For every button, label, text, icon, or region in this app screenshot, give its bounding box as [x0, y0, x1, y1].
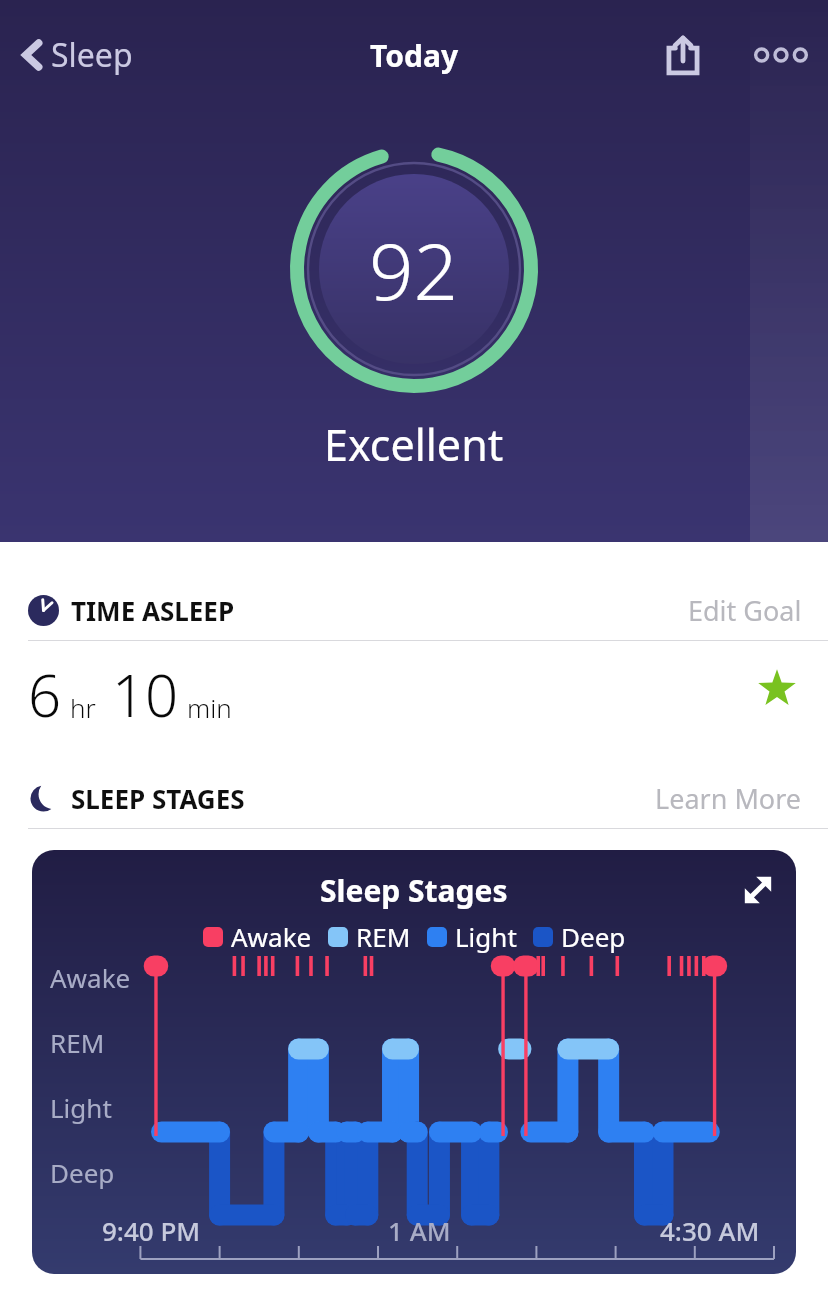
staticText: min	[187, 690, 232, 725]
staticText: REM	[50, 1025, 105, 1060]
button[interactable]: Edit Goal	[686, 590, 804, 631]
staticText: Deep	[561, 919, 626, 954]
staticText: Today	[370, 35, 459, 76]
staticText: 9:40 PM	[102, 1213, 201, 1248]
staticText: REM	[356, 919, 411, 954]
button[interactable]: Expand chart	[730, 862, 786, 918]
staticText: TIME ASLEEP	[71, 593, 235, 628]
staticText: Sleep Stages	[320, 870, 508, 911]
button[interactable]: Learn More	[653, 778, 804, 819]
button[interactable]: More options	[748, 22, 814, 88]
button[interactable]: Share	[650, 22, 716, 88]
staticText: Light	[455, 919, 517, 954]
staticText: Learn More	[655, 780, 802, 817]
staticText: Awake	[231, 919, 312, 954]
button[interactable]: Sleep	[12, 27, 141, 83]
staticText: 10	[112, 655, 179, 734]
staticText: Awake	[50, 960, 131, 995]
staticText: Excellent	[324, 415, 504, 474]
staticText: SLEEP STAGES	[71, 781, 245, 816]
staticText: Light	[50, 1090, 112, 1125]
staticText: hr	[70, 690, 96, 725]
staticText: Sleep	[51, 33, 133, 77]
button[interactable]: Sleep Stages	[32, 850, 796, 1274]
staticText: Deep	[50, 1155, 115, 1190]
staticText: Edit Goal	[688, 592, 802, 629]
staticText: 4:30 AM	[660, 1213, 760, 1248]
staticText: 92	[369, 217, 459, 323]
staticText: 1 AM	[388, 1213, 451, 1248]
staticText: 6	[28, 655, 62, 734]
